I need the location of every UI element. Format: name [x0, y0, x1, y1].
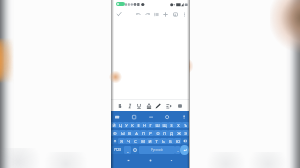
staticText: Ь [162, 139, 165, 144]
staticText: ?123 [114, 148, 121, 152]
staticText: Ф [113, 131, 117, 136]
button[interactable]: Redo [143, 10, 151, 18]
button[interactable]: Highlighter [153, 101, 162, 110]
button[interactable]: Formatting [164, 101, 173, 110]
button[interactable]: Paragraph style [175, 101, 184, 110]
button[interactable]: Done [115, 10, 123, 18]
button[interactable]: Ш [154, 122, 161, 128]
button[interactable]: Ы [119, 130, 126, 136]
staticText: О [156, 131, 160, 136]
button[interactable]: Е [135, 122, 141, 128]
button[interactable]: Bold [115, 101, 124, 110]
button[interactable]: У [123, 122, 129, 128]
button[interactable]: З [168, 122, 175, 128]
staticText: Ч [127, 139, 130, 144]
staticText: В [128, 131, 131, 136]
button[interactable]: Ц [117, 122, 123, 128]
staticText: Ю [176, 139, 180, 144]
button[interactable]: More options [180, 10, 188, 18]
staticText: Т [155, 139, 158, 144]
staticText: К [131, 123, 134, 128]
button[interactable]: Italic [125, 101, 134, 110]
staticText: Н [143, 123, 146, 128]
button[interactable]: Settings [163, 113, 170, 120]
button[interactable]: Shift [111, 138, 118, 144]
staticText: Ш [155, 123, 160, 128]
button[interactable]: . [175, 146, 180, 154]
staticText: И [148, 139, 152, 144]
button[interactable]: Image [171, 10, 179, 18]
staticText: Г [149, 123, 152, 128]
button[interactable]: О [154, 130, 161, 136]
staticText: А [135, 131, 138, 136]
staticText: Ы [121, 131, 125, 136]
staticText: . [177, 148, 179, 153]
button[interactable]: Underline [134, 101, 143, 110]
button[interactable]: В [126, 130, 133, 136]
button[interactable]: Т [153, 138, 160, 144]
staticText: Х [177, 123, 180, 128]
staticText: У [125, 123, 128, 128]
button[interactable]: П [140, 130, 147, 136]
button[interactable]: Undo [134, 10, 142, 18]
button[interactable]: Ч [125, 138, 132, 144]
button[interactable]: Add [161, 10, 169, 18]
staticText: Р [149, 131, 152, 136]
button[interactable]: Щ [161, 122, 168, 128]
button[interactable]: Я [118, 138, 125, 144]
button[interactable]: Keyboard layout [113, 113, 120, 120]
button[interactable]: М [139, 138, 146, 144]
button[interactable]: , [124, 146, 131, 154]
button[interactable]: А [133, 130, 140, 136]
button[interactable]: Ъ [182, 122, 189, 128]
button[interactable]: Ф [111, 130, 119, 136]
staticText: Э [184, 131, 187, 136]
staticText: Ъ [184, 123, 187, 128]
staticText: Ж [177, 131, 181, 136]
button[interactable]: Text colour [144, 101, 153, 110]
button[interactable]: Recent apps [168, 157, 175, 164]
staticText: П [142, 131, 145, 136]
button[interactable]: Ю [174, 138, 181, 144]
button[interactable]: Backspace [181, 138, 189, 144]
button[interactable]: Voice typing [147, 113, 154, 120]
button[interactable]: Русский [139, 146, 175, 154]
button[interactable]: Emoji [131, 146, 139, 154]
staticText: Й [112, 123, 116, 128]
button[interactable]: Х [175, 122, 182, 128]
button[interactable]: Home [147, 157, 154, 164]
button[interactable]: ?123 [111, 146, 124, 154]
staticText: Л [163, 131, 166, 136]
staticText: М [141, 139, 145, 144]
button[interactable]: Р [147, 130, 154, 136]
button[interactable]: Н [141, 122, 147, 128]
staticText: Я [120, 139, 123, 144]
button[interactable]: Checklist [152, 10, 160, 18]
staticText: Е [137, 123, 140, 128]
staticText: Щ [162, 123, 167, 128]
staticText: Ц [119, 123, 122, 128]
button[interactable]: Enter [180, 145, 189, 155]
button[interactable]: Д [168, 130, 175, 136]
button[interactable]: Back [125, 157, 132, 164]
button[interactable]: К [129, 122, 135, 128]
staticText: Д [170, 131, 173, 136]
button[interactable]: И [146, 138, 153, 144]
button[interactable]: Ж [175, 130, 182, 136]
button[interactable]: Й [111, 122, 117, 128]
staticText: Б [169, 139, 172, 144]
button[interactable]: Ь [160, 138, 167, 144]
button[interactable]: Б [167, 138, 174, 144]
button[interactable]: Clipboard [130, 113, 137, 120]
button[interactable]: Г [147, 122, 154, 128]
staticText: З [170, 123, 173, 128]
button[interactable]: Э [182, 130, 189, 136]
staticText: С [134, 139, 137, 144]
staticText: , [127, 148, 129, 153]
staticText: Русский [151, 148, 163, 152]
button[interactable]: С [132, 138, 139, 144]
button[interactable]: Л [161, 130, 168, 136]
button[interactable]: Microphone [180, 113, 187, 120]
